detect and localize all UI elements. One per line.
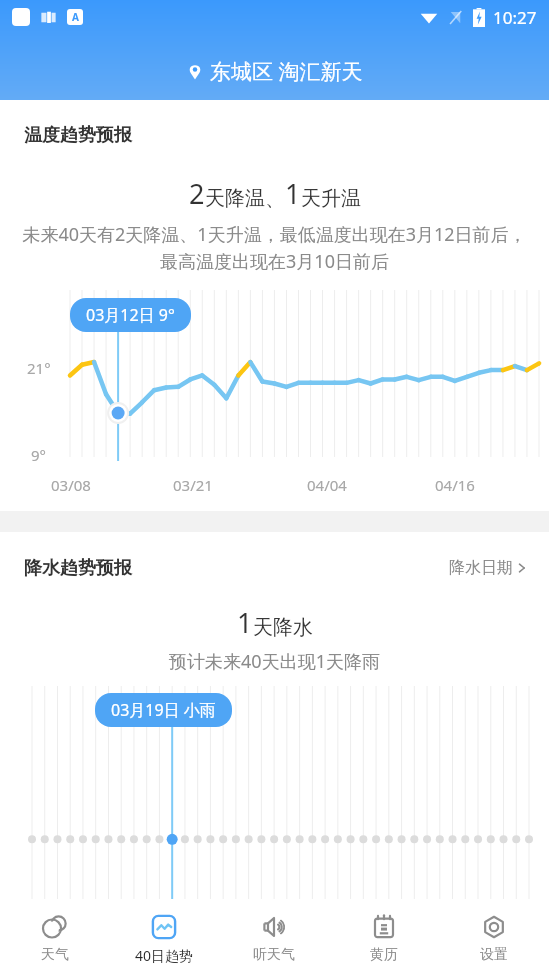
staticText: 未来40天有2天降温、1天升温，最低温度出现在3月12日前后，最高温度出现在3月… (20, 222, 529, 274)
button[interactable]: 40日趋势 (109, 899, 219, 977)
staticText: 9° (31, 445, 47, 465)
staticText: 1 (237, 604, 253, 641)
staticText: 04/04 (307, 475, 347, 495)
button[interactable]: 03月19日 小雨 (95, 693, 232, 727)
staticText: 03/08 (51, 475, 91, 495)
staticText: 2 (189, 175, 205, 212)
button[interactable]: 降水日期 (445, 554, 531, 582)
button[interactable]: 黄历 (329, 899, 439, 977)
staticText: 10:27 (493, 6, 537, 29)
staticText: 降水趋势预报 (24, 557, 132, 580)
button[interactable]: 03月12日 9° (70, 298, 191, 332)
staticText: 天升温 (301, 186, 361, 211)
staticText: 黄历 (370, 946, 398, 964)
staticText: 温度趋势预报 (24, 124, 132, 147)
staticText: 降水日期 (449, 558, 513, 578)
staticText: 03月12日 9° (86, 304, 175, 326)
staticText: 21° (27, 358, 51, 378)
staticText: 天降水 (253, 615, 313, 640)
staticText: 03月19日 小雨 (111, 699, 216, 721)
staticText: A (72, 10, 79, 24)
staticText: 预计未来40天出现1天降雨 (0, 649, 549, 674)
staticText: 天气 (41, 946, 69, 964)
button[interactable]: 听天气 (219, 899, 329, 977)
button[interactable]: 天气 (0, 899, 109, 977)
staticText: 40日趋势 (135, 946, 194, 965)
staticText: 1 (285, 175, 301, 212)
staticText: 听天气 (253, 946, 295, 964)
staticText: 03/21 (173, 475, 213, 495)
staticText: 设置 (480, 946, 508, 964)
staticText: 04/16 (435, 475, 475, 495)
staticText: 东城区 淘汇新天 (210, 57, 363, 86)
staticText: 天降温、 (205, 186, 285, 211)
button[interactable]: 设置 (439, 899, 549, 977)
